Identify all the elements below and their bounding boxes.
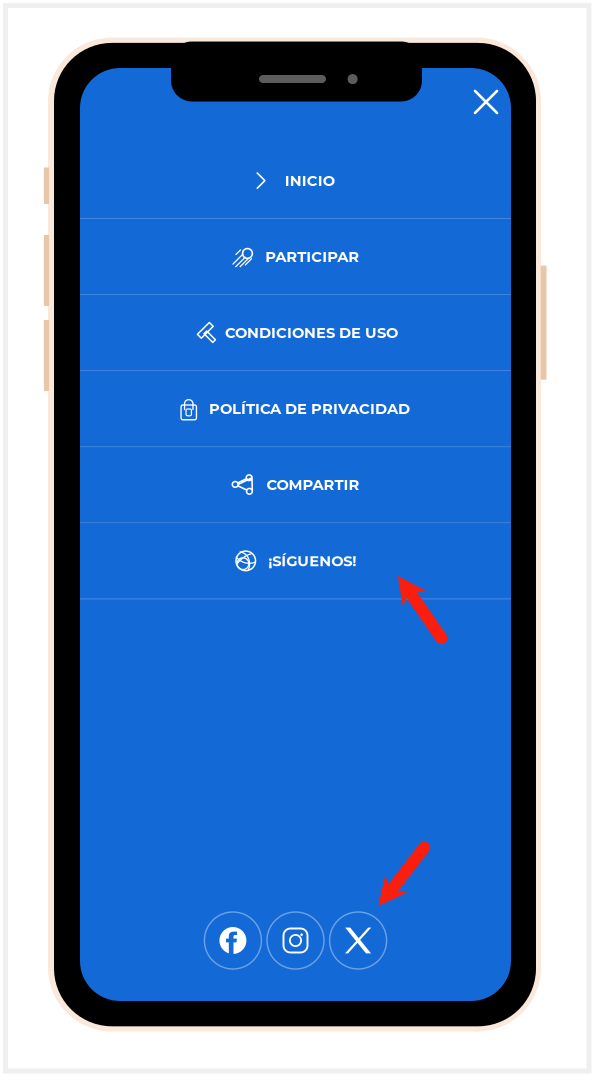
staticText: INICIO (285, 172, 335, 190)
button[interactable]: PARTICIPAR (80, 219, 511, 294)
button[interactable]: INICIO (80, 143, 511, 218)
button[interactable]: ¡SÍGUENOS! (80, 523, 511, 598)
staticText: CONDICIONES DE USO (225, 324, 398, 342)
button[interactable]: X (330, 912, 387, 969)
staticText: POLÍTICA DE PRIVACIDAD (209, 400, 410, 418)
button[interactable]: Instagram (267, 912, 324, 969)
button[interactable]: Facebook (204, 912, 261, 969)
button[interactable]: Close (462, 81, 510, 129)
staticText: COMPARTIR (266, 476, 359, 494)
staticText: ¡SÍGUENOS! (268, 552, 356, 570)
staticText: PARTICIPAR (265, 248, 359, 266)
button[interactable]: CONDICIONES DE USO (80, 295, 511, 370)
button[interactable]: POLÍTICA DE PRIVACIDAD (80, 371, 511, 446)
button[interactable]: COMPARTIR (80, 447, 511, 522)
